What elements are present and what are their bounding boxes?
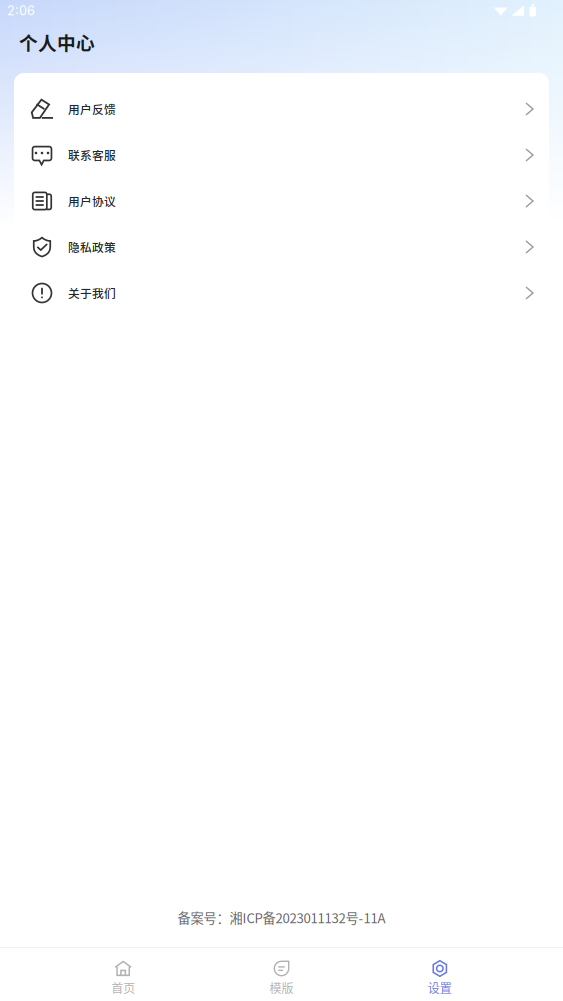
button[interactable]: 关于我们: [14, 270, 549, 316]
button[interactable]: 首页: [44, 948, 202, 1001]
button[interactable]: 用户协议: [14, 178, 549, 224]
button[interactable]: 设置: [361, 948, 519, 1001]
button[interactable]: 联系客服: [14, 132, 549, 178]
staticText: 隐私政策: [68, 238, 116, 255]
button[interactable]: 模版: [202, 948, 361, 1001]
button[interactable]: 用户反馈: [14, 86, 549, 132]
staticText: 模版: [269, 979, 293, 996]
staticText: 个人中心: [19, 28, 95, 55]
staticText: 关于我们: [68, 284, 116, 301]
staticText: 2:06: [7, 3, 35, 18]
staticText: 备案号：湘ICP备2023011132号-11A: [177, 908, 385, 927]
staticText: 联系客服: [68, 146, 116, 163]
staticText: 首页: [111, 979, 135, 996]
staticText: 用户反馈: [68, 100, 116, 117]
staticText: 设置: [428, 979, 452, 996]
button[interactable]: 隐私政策: [14, 224, 549, 270]
staticText: 用户协议: [68, 192, 116, 209]
